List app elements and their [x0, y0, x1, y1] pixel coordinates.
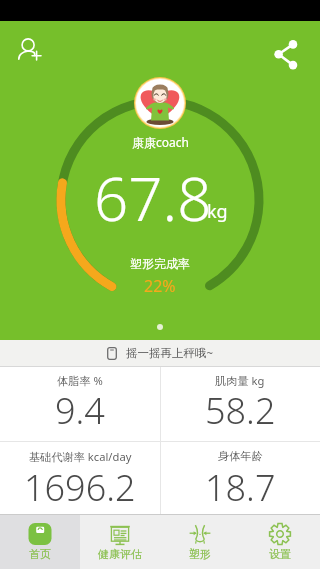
- staticText: 塑形: [189, 547, 211, 561]
- staticText: 首页: [29, 547, 51, 561]
- staticText: 基础代谢率 kcal/day: [29, 449, 132, 464]
- staticText: 身体年龄: [218, 449, 263, 463]
- button[interactable]: 设置: [240, 515, 320, 569]
- button[interactable]: 摇一摇再上秤哦~: [0, 340, 320, 366]
- staticText: 18.7: [205, 463, 276, 512]
- staticText: 体脂率 %: [57, 373, 103, 388]
- button[interactable]: Share: [263, 32, 308, 77]
- button[interactable]: 身体年龄: [160, 442, 320, 515]
- staticText: 9.4: [55, 386, 105, 435]
- staticText: 肌肉量 kg: [215, 373, 265, 388]
- button[interactable]: Coach avatar: [134, 77, 186, 129]
- staticText: 67.8: [94, 157, 212, 239]
- button[interactable]: 肌肉量 kg: [160, 367, 320, 440]
- staticText: 摇一摇再上秤哦~: [126, 345, 214, 361]
- staticText: 设置: [269, 547, 291, 561]
- staticText: 健康评估: [98, 547, 142, 561]
- button[interactable]: 塑形: [160, 515, 240, 569]
- button[interactable]: 首页: [0, 515, 80, 569]
- staticText: kg: [207, 199, 228, 224]
- staticText: 22%: [144, 275, 176, 297]
- staticText: 58.2: [205, 386, 276, 435]
- button[interactable]: 基础代谢率 kcal/day: [0, 442, 160, 515]
- staticText: 1696.2: [24, 463, 136, 512]
- button[interactable]: 体脂率 %: [0, 367, 160, 440]
- button[interactable]: Add user: [7, 27, 52, 72]
- staticText: 康康coach: [132, 134, 189, 150]
- button[interactable]: 健康评估: [80, 515, 160, 569]
- staticText: 塑形完成率: [130, 256, 190, 271]
